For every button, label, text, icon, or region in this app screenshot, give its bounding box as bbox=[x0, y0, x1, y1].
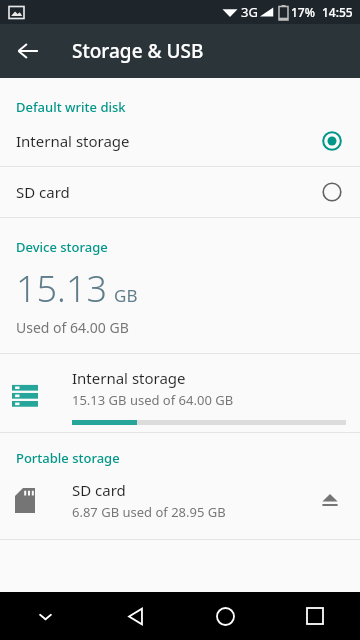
button[interactable]: Recent apps bbox=[270, 592, 360, 640]
button[interactable]: Home bbox=[180, 592, 270, 640]
staticText: 17% bbox=[291, 4, 315, 20]
button[interactable]: SD card bbox=[0, 167, 360, 217]
staticText: 3G bbox=[241, 3, 258, 21]
staticText: 15.13 GB used of 64.00 GB bbox=[72, 391, 234, 409]
button[interactable]: Internal storage bbox=[0, 116, 360, 166]
button[interactable]: Back bbox=[90, 592, 180, 640]
staticText: Storage & USB bbox=[72, 38, 204, 64]
staticText: Internal storage bbox=[16, 131, 130, 151]
button[interactable]: Back bbox=[4, 27, 52, 75]
staticText: Portable storage bbox=[16, 449, 120, 467]
button[interactable]: Hide keyboard bbox=[0, 592, 90, 640]
button[interactable]: Internal storage bbox=[0, 354, 360, 432]
button[interactable]: Eject SD card bbox=[308, 478, 352, 522]
staticText: 15.13 bbox=[16, 264, 108, 313]
staticText: SD card bbox=[72, 480, 126, 500]
button[interactable]: SD card bbox=[0, 471, 360, 529]
staticText: SD card bbox=[16, 182, 70, 202]
staticText: Device storage bbox=[16, 238, 108, 256]
staticText: Default write disk bbox=[16, 98, 126, 116]
staticText: 14:55 bbox=[322, 4, 353, 20]
staticText: GB bbox=[114, 284, 138, 307]
staticText: Internal storage bbox=[72, 368, 186, 388]
staticText: 6.87 GB used of 28.95 GB bbox=[72, 503, 226, 521]
staticText: Used of 64.00 GB bbox=[16, 318, 129, 337]
